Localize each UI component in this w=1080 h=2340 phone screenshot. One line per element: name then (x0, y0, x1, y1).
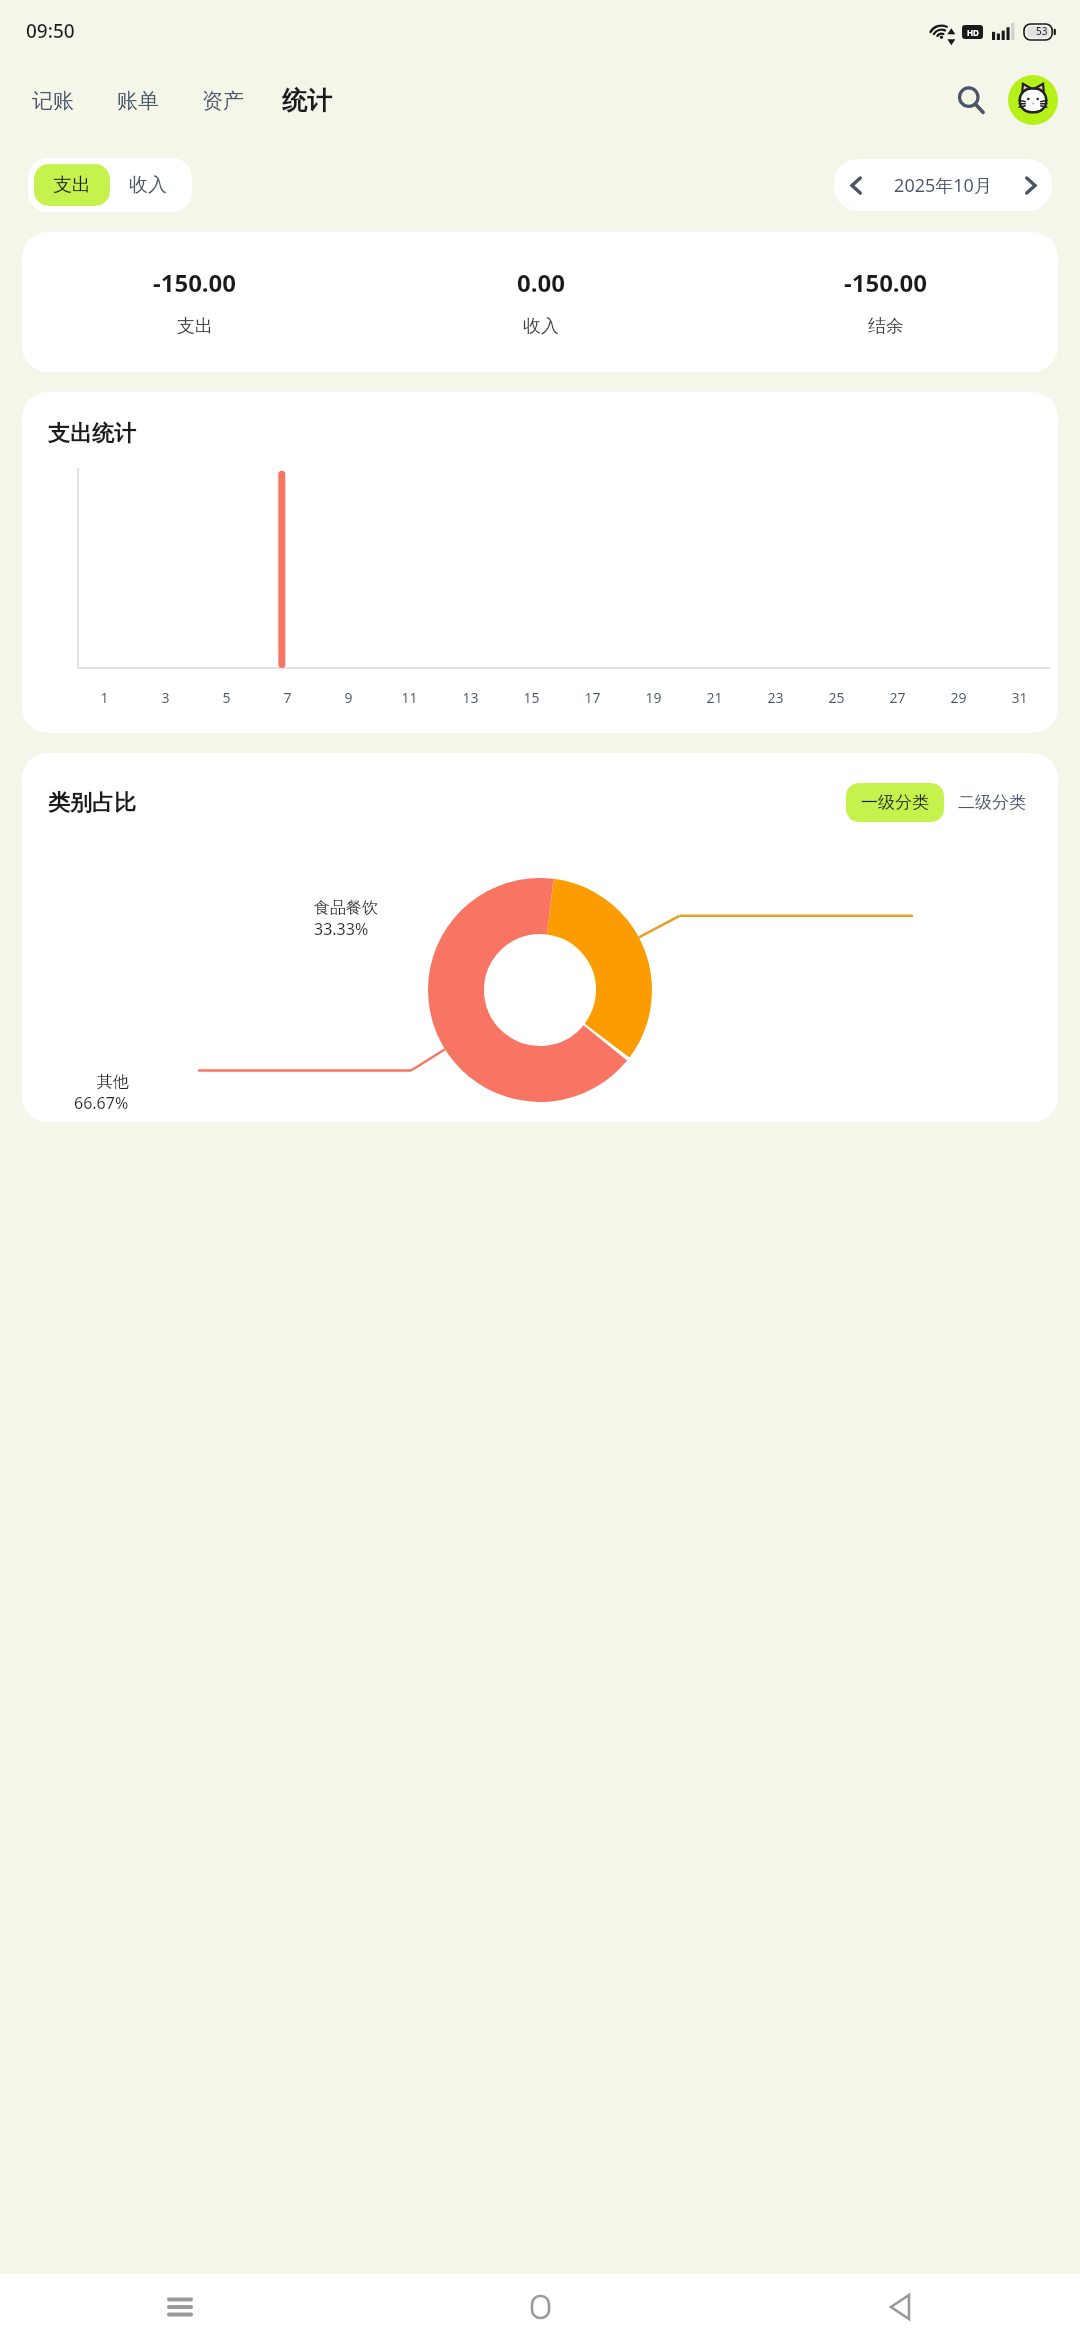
staticText: 收入 (523, 315, 559, 338)
button[interactable]: Recent apps (0, 2274, 360, 2340)
staticText: 3 (135, 688, 196, 707)
staticText: 支出统计 (48, 420, 136, 448)
staticText: 23 (745, 688, 806, 707)
staticText: 15 (501, 688, 562, 707)
staticText: 11 (379, 688, 440, 707)
button[interactable]: 一级分类 (846, 783, 944, 822)
staticText: 25 (806, 688, 867, 707)
button[interactable]: Back (720, 2274, 1080, 2340)
button[interactable]: Profile (1008, 75, 1058, 125)
staticText: 统计 (282, 85, 332, 116)
button[interactable]: Previous month (834, 163, 878, 207)
button[interactable]: Search (948, 77, 994, 123)
staticText: 66.67% (74, 1092, 129, 1114)
button[interactable]: 支出 (34, 164, 110, 206)
staticText: -150.00 (844, 266, 928, 299)
staticText: 其他 (97, 1072, 129, 1092)
staticText: 9 (318, 688, 379, 707)
staticText: 0.00 (517, 266, 565, 299)
staticText: 33.33% (314, 918, 369, 940)
staticText: 一级分类 (861, 792, 929, 813)
staticText: 结余 (868, 315, 904, 338)
button[interactable]: 支出统计 (22, 392, 1058, 733)
button[interactable]: 类别占比 (22, 753, 1058, 1122)
button[interactable]: 资产 (198, 80, 248, 122)
staticText: 收入 (129, 173, 167, 197)
staticText: 2025年10月 (878, 173, 1008, 198)
staticText: 资产 (202, 88, 244, 114)
staticText: 31 (989, 688, 1050, 707)
staticText: 支出 (177, 315, 213, 338)
staticText: 27 (867, 688, 928, 707)
staticText: 1 (74, 688, 135, 707)
staticText: 类别占比 (48, 789, 136, 817)
button[interactable]: 账单 (113, 80, 163, 122)
button[interactable]: -150.00 (22, 232, 1058, 372)
staticText: 食品餐饮 (314, 898, 378, 918)
button[interactable]: 记账 (28, 80, 78, 122)
staticText: 支出 (53, 173, 91, 197)
staticText: 7 (257, 688, 318, 707)
staticText: 53 (1036, 24, 1048, 38)
button[interactable]: Home (360, 2274, 720, 2340)
button[interactable]: 收入 (110, 164, 186, 206)
staticText: 13 (440, 688, 501, 707)
button[interactable]: Previous month (834, 159, 1052, 211)
staticText: 记账 (32, 88, 74, 114)
staticText: 09:50 (26, 18, 75, 44)
button[interactable]: 统计 (278, 79, 336, 122)
staticText: -150.00 (153, 266, 237, 299)
button[interactable]: 二级分类 (952, 783, 1032, 822)
staticText: 29 (928, 688, 989, 707)
staticText: 账单 (117, 88, 159, 114)
staticText: 5 (196, 688, 257, 707)
staticText: 19 (623, 688, 684, 707)
staticText: 二级分类 (958, 792, 1026, 813)
staticText: 17 (562, 688, 623, 707)
staticText: HD (967, 27, 979, 38)
staticText: 21 (684, 688, 745, 707)
button[interactable]: Next month (1008, 163, 1052, 207)
